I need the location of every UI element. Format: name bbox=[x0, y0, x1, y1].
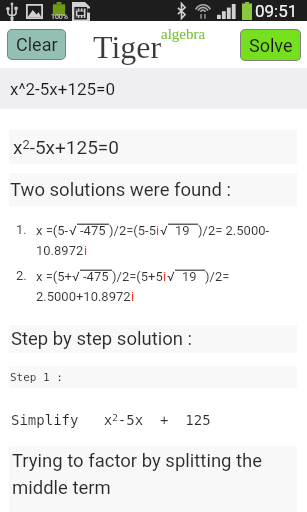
staticText: √ bbox=[160, 223, 168, 238]
staticText: i bbox=[84, 243, 88, 258]
staticText: 2. bbox=[16, 268, 27, 283]
staticText: 1. bbox=[16, 222, 27, 237]
staticText: Tiger bbox=[93, 29, 162, 64]
staticText: x^2-5x+125=0 bbox=[10, 79, 115, 99]
staticText: )/2= bbox=[205, 269, 230, 284]
staticText: Clear bbox=[16, 34, 58, 55]
staticText: Two solutions were found : bbox=[10, 179, 231, 201]
staticText: Simplify x2-5x + 125 bbox=[11, 412, 211, 428]
staticText: 2.5000+10.8972 bbox=[36, 289, 131, 304]
staticText: √ bbox=[72, 269, 80, 284]
button[interactable]: Clear bbox=[7, 29, 66, 60]
staticText: Step by step solution : bbox=[11, 328, 193, 350]
staticText: √ bbox=[167, 269, 175, 284]
staticText: Trying to factor by splitting the middle… bbox=[12, 450, 300, 499]
staticText: 19 bbox=[182, 269, 197, 284]
staticText: )/2= 2.5000- bbox=[198, 223, 270, 238]
staticText: Step 1 : bbox=[10, 371, 63, 384]
staticText: 09:51 bbox=[255, 1, 298, 21]
staticText: 100% bbox=[51, 13, 68, 21]
staticText: i bbox=[156, 223, 160, 238]
staticText: √ bbox=[69, 223, 77, 238]
staticText: i bbox=[131, 289, 135, 304]
staticText: )/2=(5-5 bbox=[109, 223, 156, 238]
button[interactable]: Solve bbox=[240, 29, 301, 61]
staticText: algebra bbox=[161, 26, 206, 43]
button[interactable]: x^2-5x+125=0 bbox=[0, 68, 307, 109]
staticText: 19 bbox=[175, 223, 190, 238]
staticText: Solve bbox=[249, 35, 293, 56]
staticText: 10.8972 bbox=[36, 243, 84, 258]
staticText: -475 bbox=[83, 269, 109, 284]
staticText: i bbox=[163, 269, 167, 284]
staticText: x2-5x+125=0 bbox=[13, 136, 119, 158]
staticText: -475 bbox=[80, 223, 106, 238]
staticText: x =(5- bbox=[36, 223, 69, 238]
staticText: )/2=(5+5 bbox=[112, 269, 163, 284]
staticText: x =(5+ bbox=[36, 269, 72, 284]
